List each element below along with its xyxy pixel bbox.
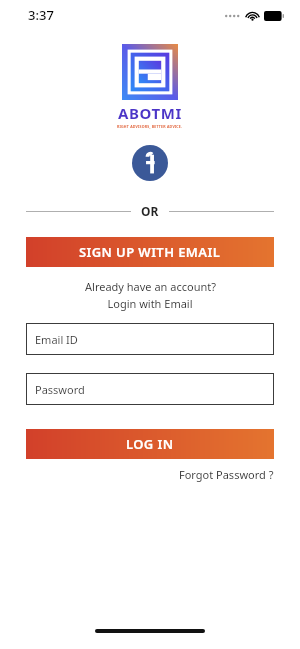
button[interactable]: Forgot Password ? [179,467,274,482]
staticText: RIGHT ADVISORS, BETTER ADVICE. [117,124,183,129]
staticText: SIGN UP WITH EMAIL [79,243,221,261]
staticText: ABOTMI [118,103,183,123]
button[interactable]: Sign in with Facebook [132,145,168,181]
button[interactable]: Login with Email [107,296,193,311]
staticText: LOG IN [126,435,174,453]
button[interactable]: SIGN UP WITH EMAIL [26,237,274,267]
staticText: OR [141,203,159,219]
staticText: Email ID [35,332,78,347]
staticText: 3:37 [28,6,54,24]
staticText: Already have an account? [85,279,216,294]
staticText: Forgot Password ? [179,467,274,482]
button[interactable]: Email ID [26,323,274,355]
button[interactable]: Password [26,373,274,405]
button[interactable]: LOG IN [26,429,274,459]
staticText: Password [35,382,85,397]
